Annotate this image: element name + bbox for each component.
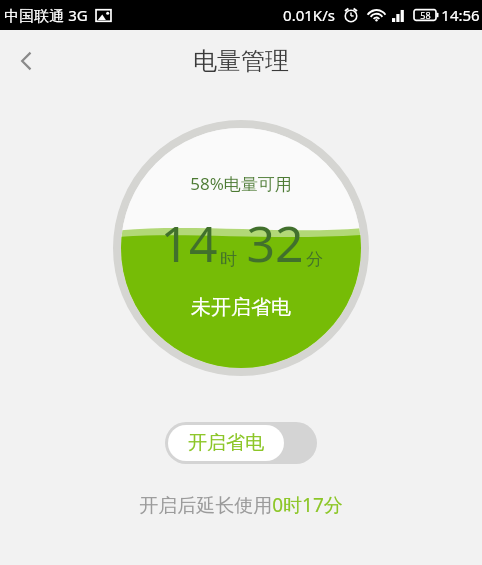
staticText: 未开启省电 <box>191 295 291 320</box>
other: Wi-Fi <box>368 7 385 24</box>
staticText: 时 <box>220 249 237 270</box>
staticText: 中国联通 3G <box>4 5 88 25</box>
staticText: 58%电量可用 <box>190 172 292 195</box>
staticText: 58 <box>420 9 431 21</box>
staticText: 32 <box>246 209 304 277</box>
other: Alarm <box>343 7 359 23</box>
button[interactable]: 开启省电 <box>165 422 317 464</box>
other: Battery <box>414 8 439 22</box>
staticText: 14 <box>160 209 218 277</box>
staticText: 开启省电 <box>188 431 264 455</box>
staticText: 开启后延长使用0时17分 <box>139 492 343 518</box>
other: Signal <box>392 8 408 22</box>
staticText: 14:56 <box>441 5 480 25</box>
button[interactable]: Back <box>0 34 54 88</box>
staticText: 电量管理 <box>193 46 289 76</box>
staticText: 分 <box>306 249 323 270</box>
staticText: 0.01K/s <box>283 5 335 25</box>
